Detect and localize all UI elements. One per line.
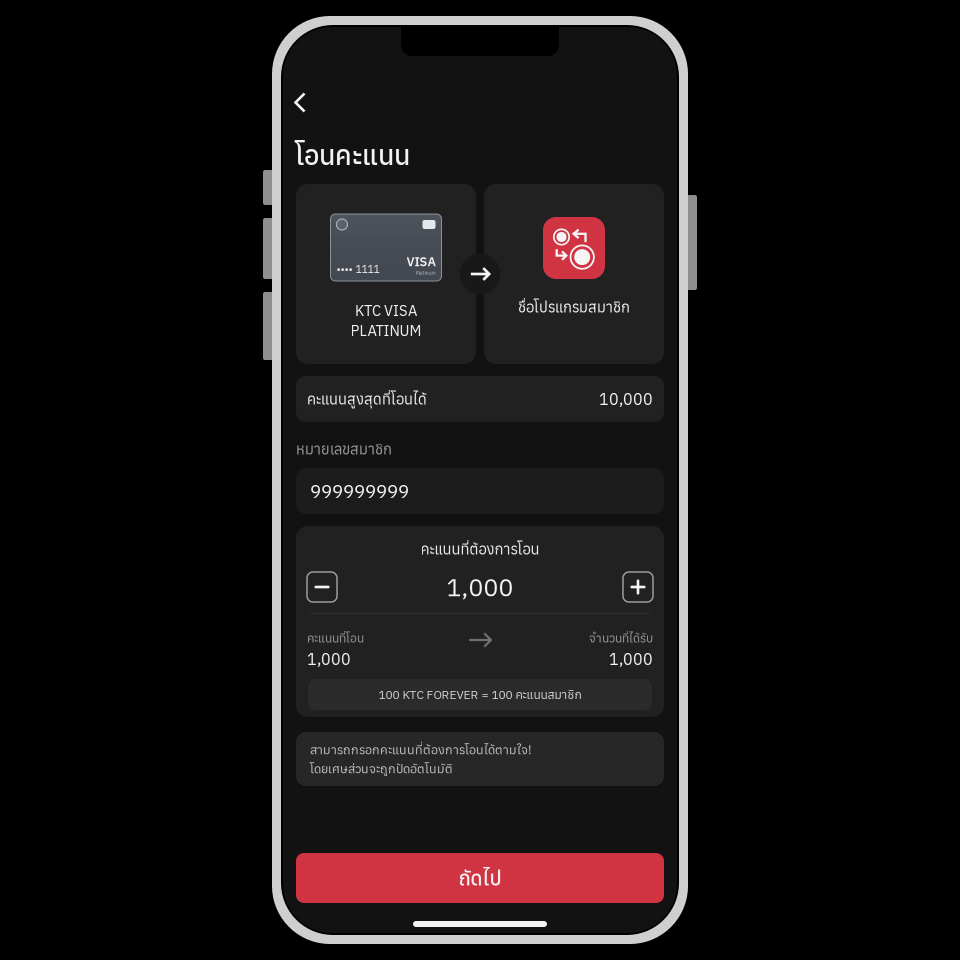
button[interactable]: Decrease points <box>307 572 337 602</box>
staticText: 1,000 <box>307 649 351 669</box>
button[interactable]: Increase points <box>623 572 653 602</box>
staticText: จำนวนที่ได้รับ <box>589 630 653 646</box>
staticText: สามารถกรอกคะแนนที่ต้องการโอนได้ตามใจ! <box>310 741 532 757</box>
button[interactable]: •••• 1111 <box>296 184 476 364</box>
staticText: 999999999 <box>310 479 409 503</box>
staticText: ถัดไป <box>458 865 501 891</box>
staticText: 1,000 <box>446 571 513 603</box>
staticText: KTC VISA <box>355 301 417 320</box>
button[interactable]: ชื่อโปรแกรมสมาชิก <box>484 184 664 364</box>
staticText: คะแนนที่ต้องการโอน <box>420 539 539 559</box>
staticText: Platinum <box>415 270 435 276</box>
button[interactable]: Back <box>284 87 316 118</box>
staticText: หมายเลขสมาชิก <box>296 439 392 459</box>
staticText: โดยเศษส่วนจะถูกปัดอัตโนมัติ <box>310 760 453 776</box>
staticText: โอนคะแนน <box>295 138 410 172</box>
staticText: VISA <box>406 253 435 270</box>
staticText: ชื่อโปรแกรมสมาชิก <box>518 297 630 317</box>
staticText: 100 KTC FOREVER = 100 คะแนนสมาชิก <box>378 687 581 702</box>
staticText: 1,000 <box>609 649 653 669</box>
staticText: 10,000 <box>599 389 653 409</box>
button[interactable]: ถัดไป <box>296 853 664 903</box>
staticText: PLATINUM <box>350 321 421 340</box>
staticText: •••• 1111 <box>336 262 379 276</box>
staticText: คะแนนที่โอน <box>307 630 364 646</box>
staticText: คะแนนสูงสุดที่โอนได้ <box>307 389 427 409</box>
